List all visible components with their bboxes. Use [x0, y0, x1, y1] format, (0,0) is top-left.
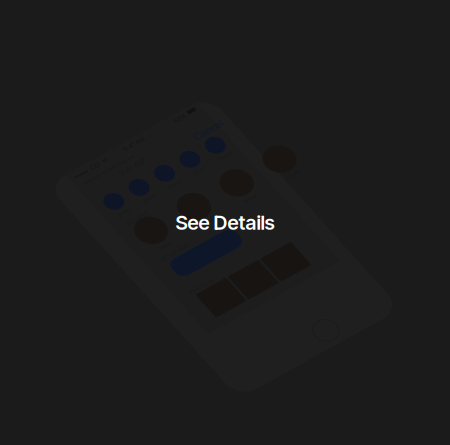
staticText: Name: [188, 110, 202, 116]
button[interactable]: See Details: [167, 202, 282, 243]
staticText: See Details: [175, 210, 274, 235]
